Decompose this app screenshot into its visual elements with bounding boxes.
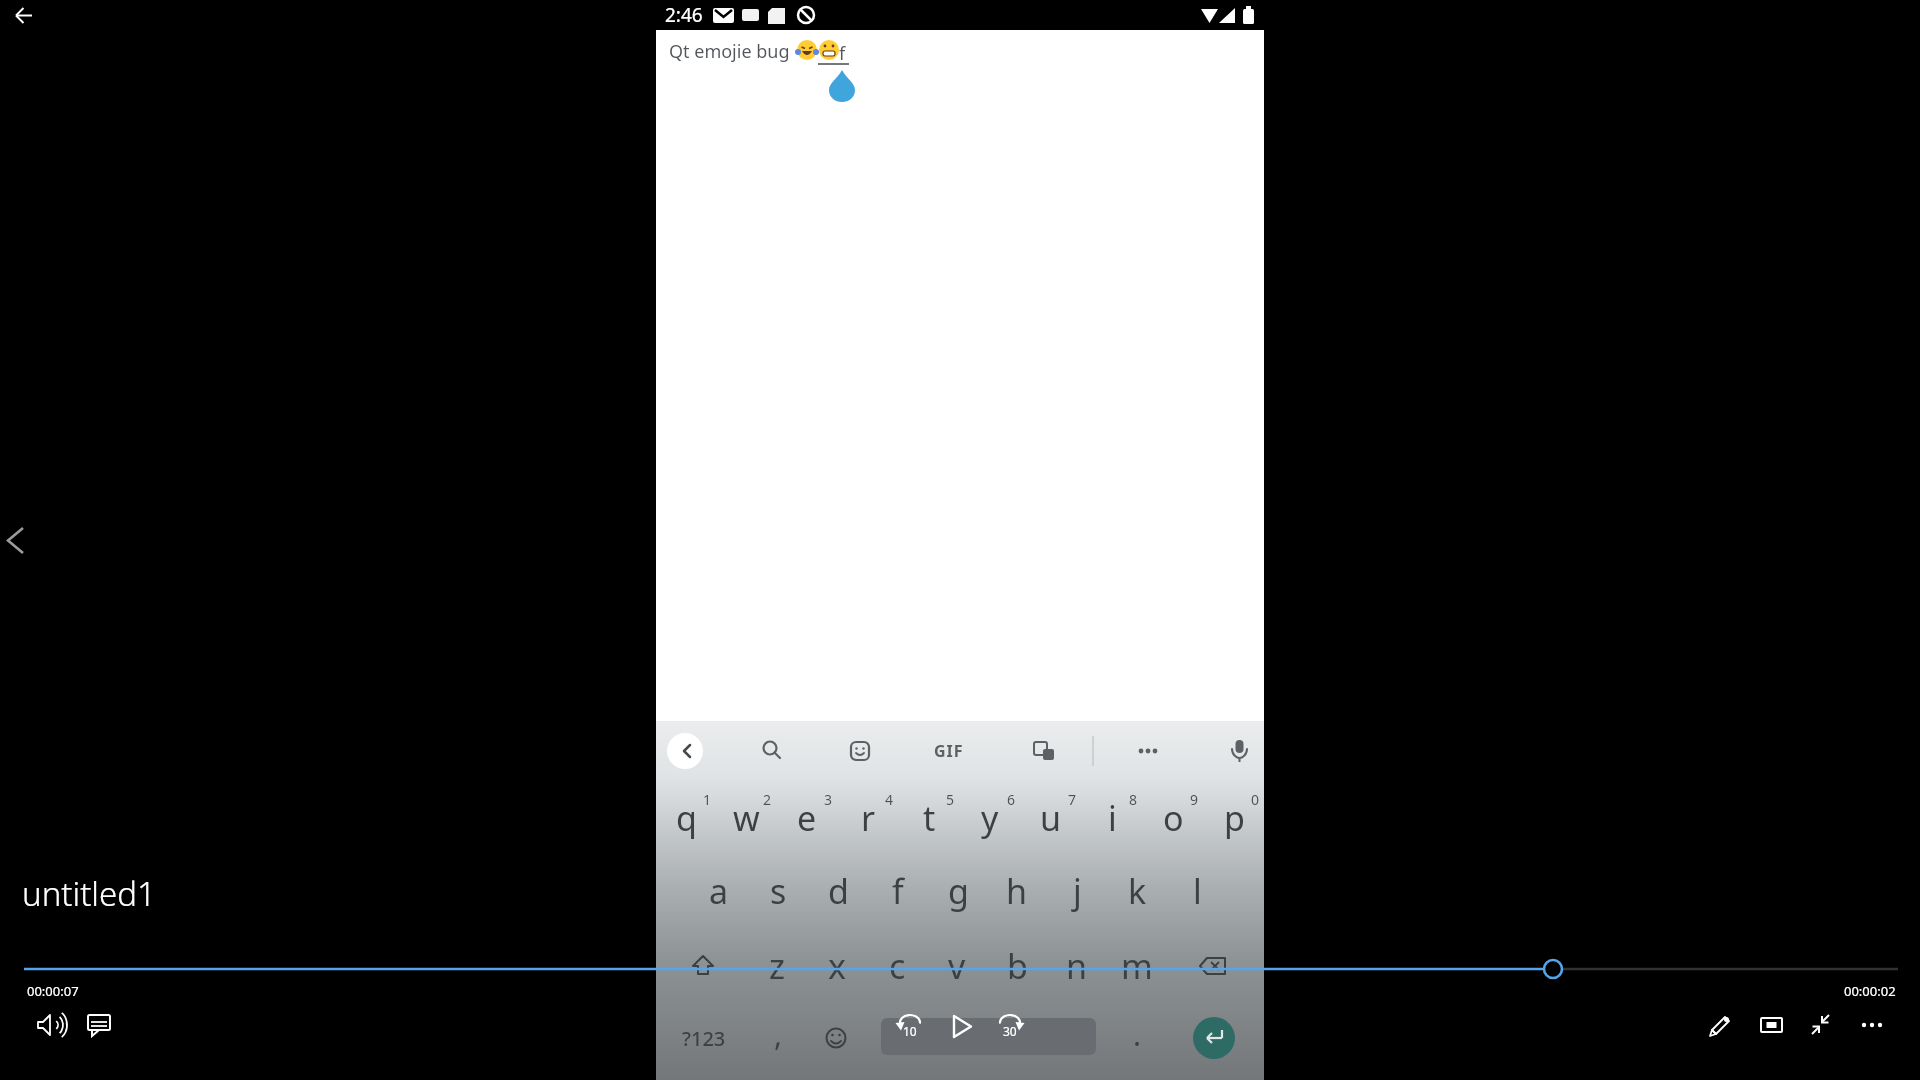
staticText: f — [839, 41, 846, 66]
staticText: j — [1073, 868, 1082, 914]
staticText: 4 — [885, 790, 894, 809]
staticText: t — [923, 795, 936, 841]
staticText: q — [676, 795, 697, 841]
staticText: 2 — [763, 790, 772, 809]
staticText: f — [892, 868, 904, 914]
staticText: . — [1133, 1014, 1142, 1055]
staticText: 7 — [1068, 790, 1077, 809]
staticText: i — [1108, 795, 1117, 841]
staticText: m — [1121, 943, 1153, 989]
staticText: d — [828, 868, 849, 914]
staticText: 10 — [903, 1023, 917, 1039]
staticText: b — [1007, 943, 1028, 989]
button[interactable] — [892, 1008, 928, 1044]
button[interactable] — [0, 516, 34, 564]
staticText: u — [1040, 795, 1062, 841]
button[interactable] — [8, 0, 40, 32]
button[interactable] — [1803, 1008, 1839, 1044]
staticText: 0 — [1251, 790, 1260, 809]
button[interactable] — [24, 958, 1898, 980]
staticText: h — [1006, 868, 1028, 914]
button[interactable] — [1753, 1008, 1789, 1044]
button[interactable] — [81, 1008, 117, 1044]
staticText: a — [709, 868, 729, 914]
staticText: r — [861, 795, 876, 841]
staticText: w — [733, 795, 760, 841]
button[interactable] — [32, 1008, 68, 1044]
staticText: 3 — [824, 790, 833, 809]
staticText: g — [948, 868, 969, 914]
staticText: untitled1 — [22, 871, 156, 916]
staticText: ?123 — [682, 1025, 726, 1052]
staticText: c — [889, 943, 906, 989]
button[interactable] — [992, 1008, 1028, 1044]
staticText: Qt emojie bug — [669, 39, 790, 64]
staticText: 9 — [1190, 790, 1199, 809]
staticText: 1 — [703, 790, 712, 809]
staticText: o — [1163, 795, 1184, 841]
staticText: k — [1128, 868, 1147, 914]
button[interactable] — [1703, 1008, 1739, 1044]
staticText: 30 — [1003, 1023, 1017, 1039]
staticText: 8 — [1129, 790, 1138, 809]
staticText: 2:46 — [665, 2, 703, 28]
staticText: p — [1224, 795, 1245, 841]
staticText: s — [770, 868, 787, 914]
staticText: z — [769, 943, 785, 989]
button[interactable] — [1852, 1008, 1888, 1044]
staticText: e — [797, 795, 817, 841]
staticText: , — [774, 1014, 783, 1055]
staticText: GIF — [934, 740, 964, 762]
button[interactable] — [942, 1008, 978, 1044]
staticText: 00:00:07 — [27, 982, 79, 1000]
staticText: 5 — [946, 790, 955, 809]
staticText: 00:00:02 — [1844, 982, 1896, 998]
staticText: y — [981, 795, 999, 841]
staticText: n — [1066, 943, 1088, 989]
staticText: l — [1193, 868, 1202, 914]
staticText: x — [828, 943, 846, 989]
staticText: 6 — [1007, 790, 1016, 809]
staticText: v — [948, 943, 966, 989]
